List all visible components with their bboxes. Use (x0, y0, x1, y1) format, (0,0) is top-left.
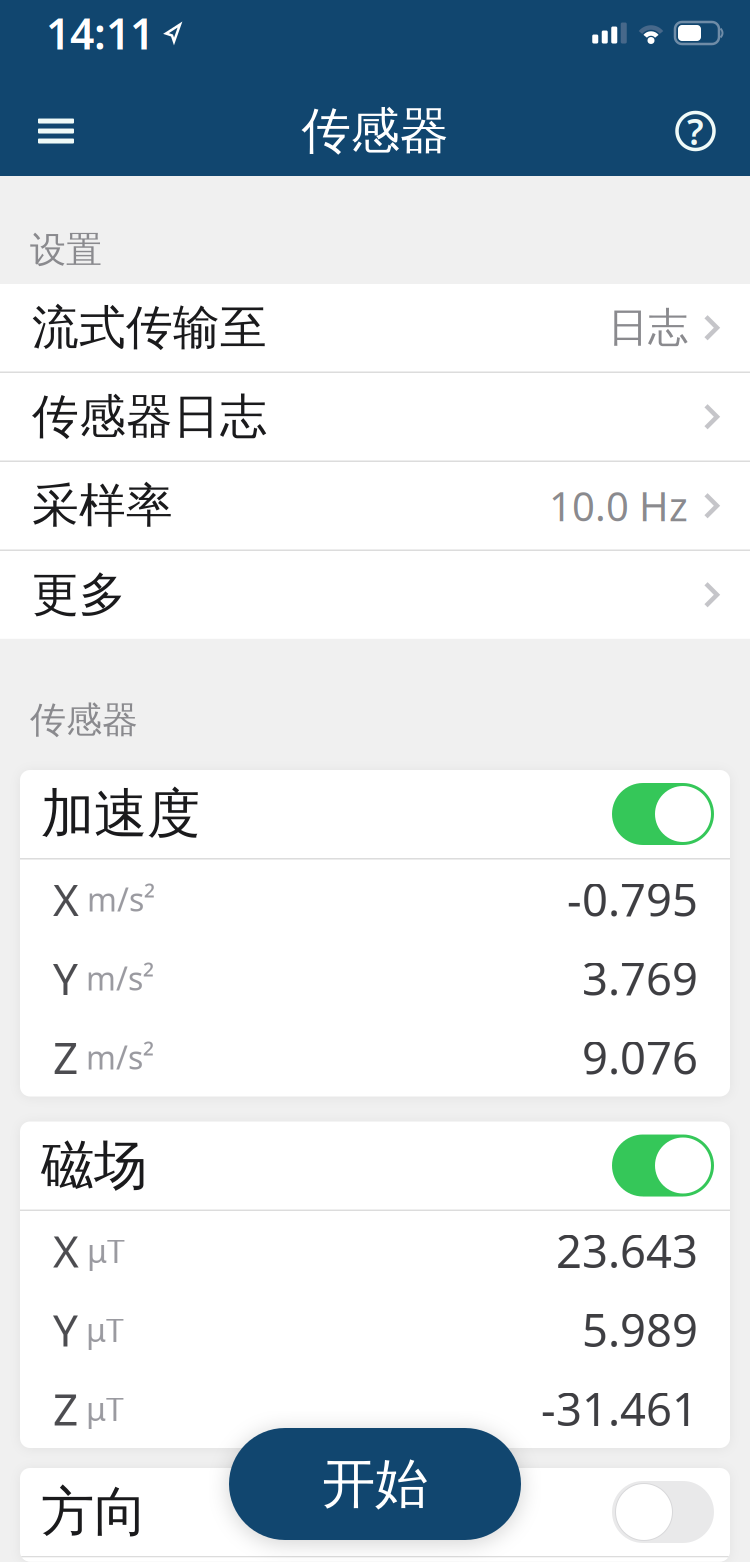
staticText: Z (53, 1028, 78, 1086)
staticText: 磁场 (41, 1133, 147, 1198)
button[interactable]: 方向 (612, 1481, 714, 1543)
button[interactable]: 磁场 (612, 1134, 714, 1196)
staticText: m/s² (79, 878, 155, 920)
staticText: 传感器 (30, 698, 138, 742)
staticText: 传感器日志 (32, 388, 267, 445)
staticText: 设置 (30, 228, 102, 272)
staticText: 开始 (322, 1451, 428, 1517)
button[interactable]: Help (677, 107, 750, 155)
staticText: ? (687, 107, 704, 155)
staticText: 流式传输至 (32, 299, 267, 356)
staticText: 23.643 (556, 1220, 698, 1281)
staticText: μT (79, 1229, 125, 1272)
button[interactable]: 流式传输至 (0, 284, 750, 371)
staticText: μT (78, 1308, 124, 1351)
staticText: 更多 (32, 566, 126, 623)
staticText: 日志 (608, 303, 688, 352)
staticText: m/s² (78, 1036, 154, 1078)
staticText: X (53, 1221, 79, 1280)
button[interactable]: 更多 (0, 551, 750, 638)
staticText: m/s² (78, 957, 154, 999)
staticText: Y (53, 1300, 78, 1359)
staticText: 采样率 (32, 477, 173, 534)
staticText: 传感器 (301, 101, 448, 161)
button[interactable]: 开始 (229, 1428, 521, 1540)
staticText: 10.0 Hz (549, 479, 688, 532)
staticText: 9.076 (582, 1027, 698, 1087)
staticText: -31.461 (541, 1378, 698, 1439)
staticText: μT (78, 1387, 124, 1430)
staticText: 方向 (41, 1479, 147, 1545)
staticText: 14:11 (46, 5, 154, 61)
staticText: Z (53, 1379, 78, 1438)
staticText: 5.989 (582, 1299, 698, 1360)
staticText: X (53, 870, 79, 928)
button[interactable]: 加速度 (612, 783, 714, 845)
staticText: 3.769 (582, 948, 698, 1008)
button[interactable]: 采样率 (0, 462, 750, 549)
staticText: -0.795 (567, 869, 698, 929)
staticText: Y (53, 949, 78, 1007)
button[interactable]: 传感器日志 (0, 373, 750, 460)
button[interactable]: Menu (0, 104, 74, 157)
staticText: 加速度 (41, 781, 200, 847)
